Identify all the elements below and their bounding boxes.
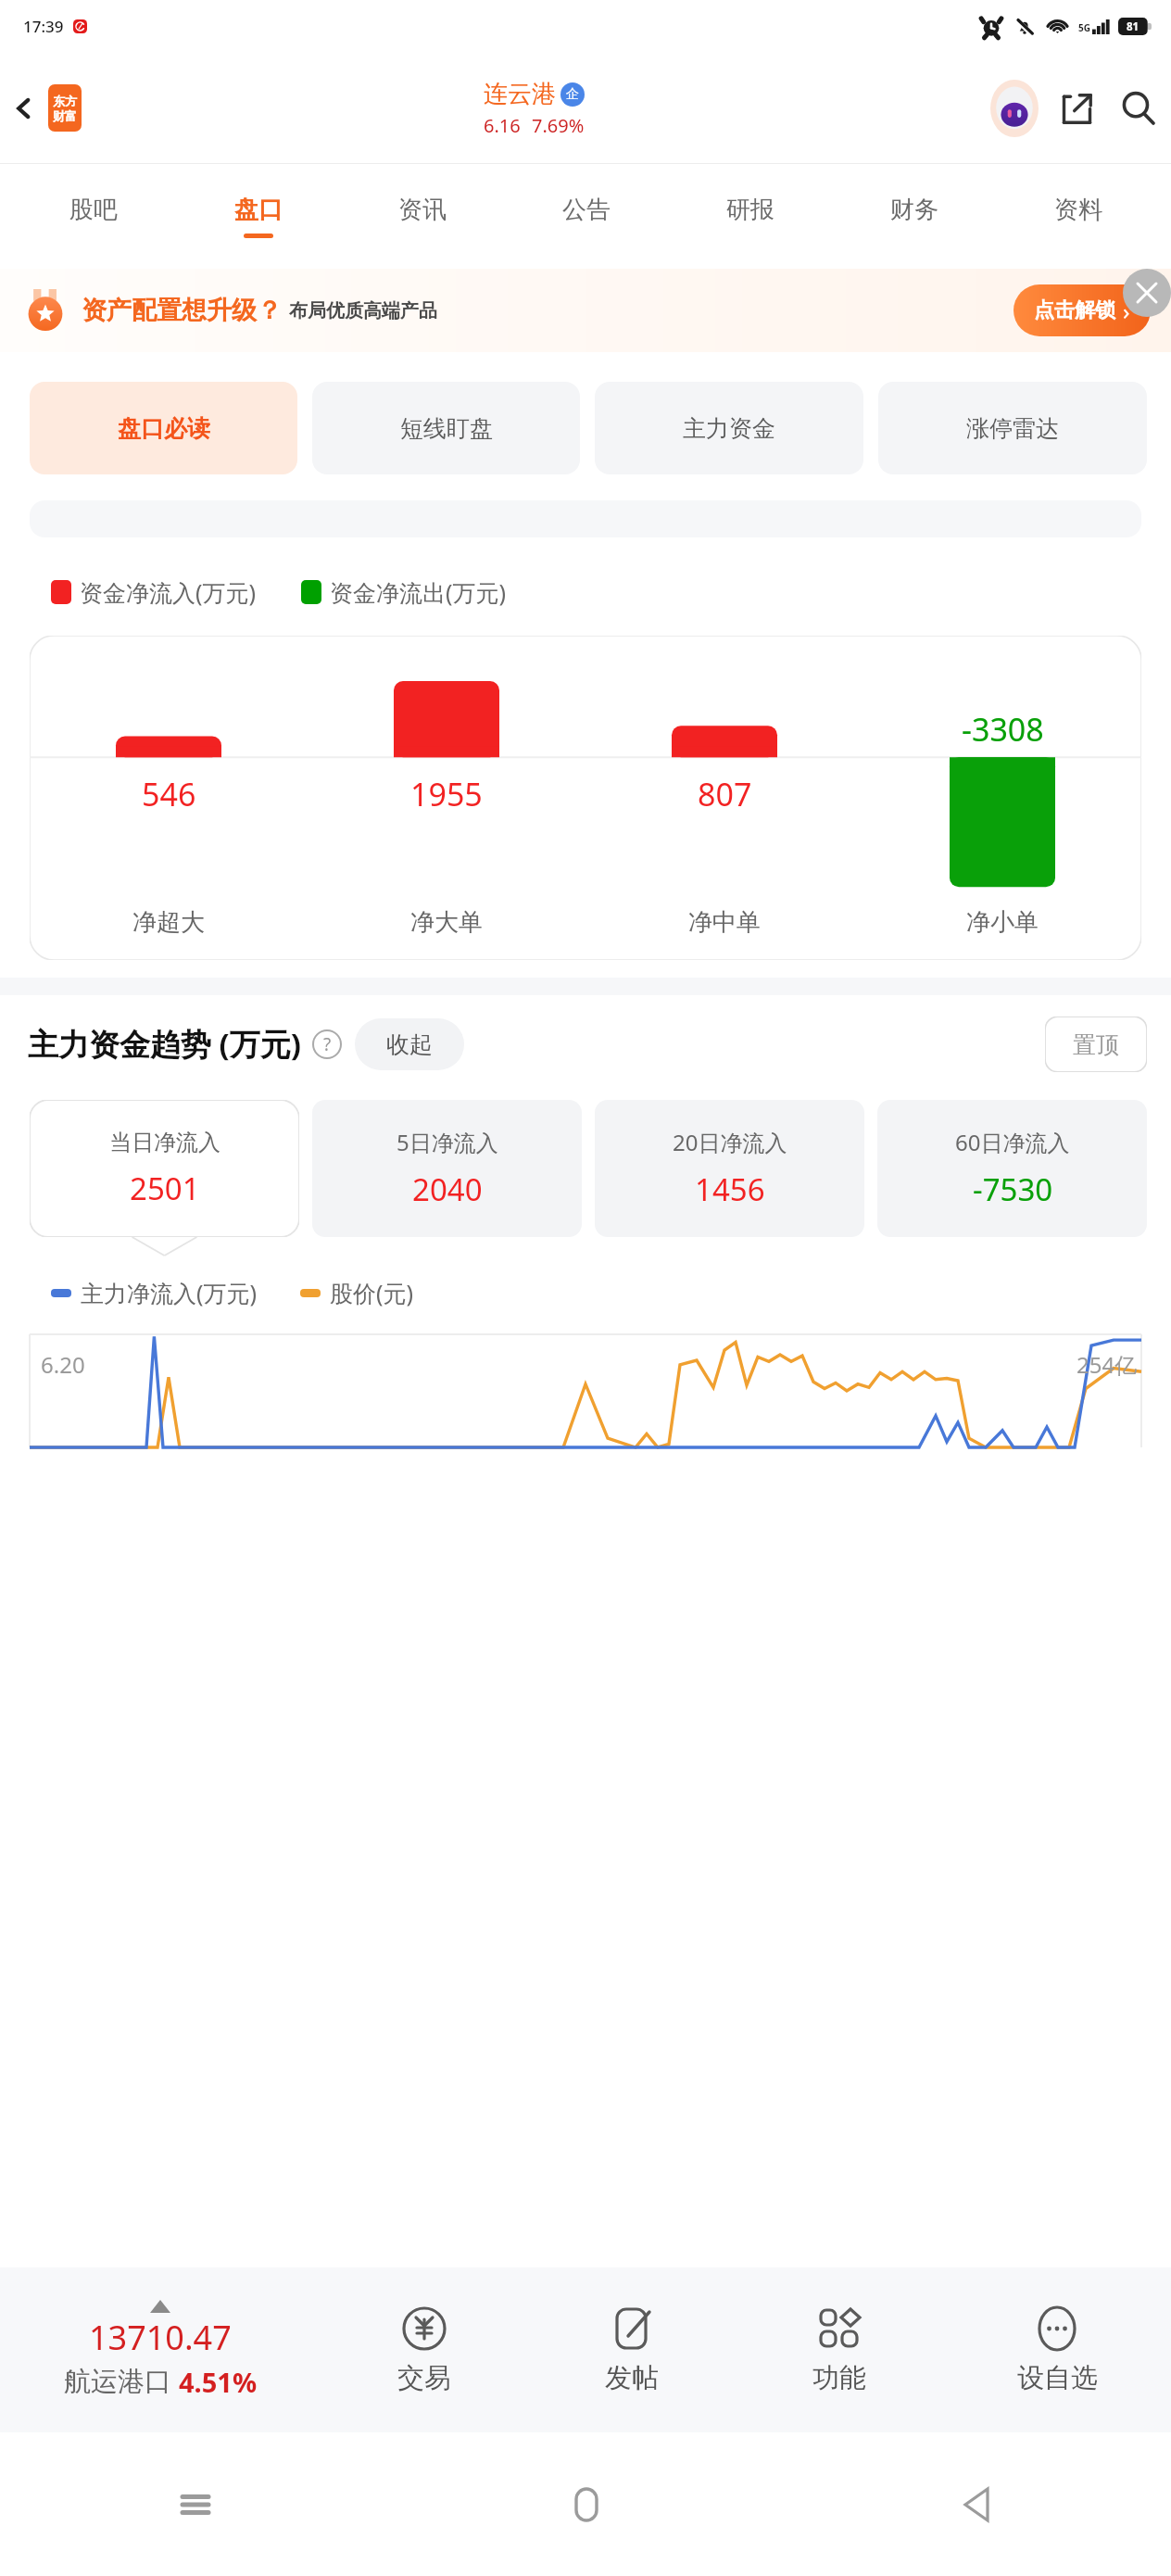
staticText: 股价(元)	[330, 1277, 414, 1308]
button[interactable]: Back	[0, 53, 48, 163]
staticText: 功能	[812, 2361, 866, 2395]
button[interactable]: 置顶	[1045, 1017, 1147, 1072]
button[interactable]: AI assistant	[988, 78, 1041, 139]
button[interactable]: 点击解锁	[1034, 284, 1130, 336]
staticText: 公告	[562, 195, 611, 225]
staticText: 546	[142, 773, 196, 815]
button[interactable]: 功能	[736, 2267, 943, 2432]
staticText: 17:39	[23, 16, 64, 37]
staticText: 东方	[53, 94, 77, 108]
staticText: 资金净流入(万元)	[80, 576, 257, 608]
button[interactable]: 5日净流入	[312, 1100, 582, 1237]
staticText: 涨停雷达	[966, 414, 1059, 443]
staticText: 净中单	[688, 907, 761, 938]
staticText: 6.20	[41, 1349, 85, 1380]
button[interactable]: 资料	[996, 164, 1160, 269]
button[interactable]: 涨停雷达	[878, 382, 1147, 474]
button[interactable]: 当日净流入	[30, 1100, 299, 1237]
staticText: 当日净流入	[109, 1129, 220, 1156]
staticText: 航运港口	[64, 2365, 171, 2399]
staticText: 60日净流入	[955, 1127, 1070, 1157]
staticText: 盘口	[234, 195, 283, 225]
staticText: 收起	[386, 1030, 433, 1059]
staticText: 7.69%	[532, 113, 585, 138]
button[interactable]: Search	[1106, 76, 1171, 141]
staticText: 5日净流入	[397, 1127, 498, 1157]
button[interactable]: 13710.47	[0, 2300, 321, 2400]
button[interactable]: 资讯	[340, 164, 504, 269]
staticText: 254亿	[1077, 1349, 1138, 1380]
button[interactable]: 东方	[48, 84, 82, 132]
staticText: 财务	[890, 195, 938, 225]
staticText: 净小单	[966, 907, 1039, 938]
button[interactable]: 设自选	[943, 2267, 1171, 2432]
staticText: 研报	[726, 195, 774, 225]
staticText: 连云港	[484, 79, 556, 109]
staticText: 设自选	[1017, 2361, 1098, 2395]
staticText: -7530	[973, 1168, 1053, 1210]
staticText: 13710.47	[89, 2315, 232, 2360]
staticText: 4.51%	[179, 2364, 258, 2400]
staticText: 点击解锁	[1034, 297, 1115, 323]
staticText: 股吧	[69, 195, 118, 225]
staticText: 主力资金趋势 (万元)	[28, 1023, 301, 1065]
button[interactable]: 盘口必读	[30, 382, 297, 474]
staticText: 1456	[695, 1168, 765, 1210]
button[interactable]: Recents	[0, 2432, 391, 2576]
staticText: 布局优质高端产品	[289, 299, 437, 322]
staticText: 盘口必读	[118, 414, 210, 443]
staticText: 交易	[397, 2361, 451, 2395]
button[interactable]: 股吧	[11, 164, 176, 269]
staticText: 发帖	[605, 2361, 659, 2395]
button[interactable]: Close	[1123, 269, 1171, 317]
staticText: 企	[566, 86, 579, 103]
button[interactable]: 发帖	[528, 2267, 736, 2432]
staticText: 81	[1127, 19, 1140, 34]
button[interactable]: 公告	[504, 164, 668, 269]
staticText: 财富	[53, 108, 77, 123]
button[interactable]: 盘口	[176, 164, 340, 269]
button[interactable]: 连云港	[484, 79, 585, 138]
staticText: 5G	[1078, 21, 1090, 34]
staticText: 6.16	[484, 113, 521, 138]
staticText: 资讯	[398, 195, 447, 225]
staticText: 资料	[1054, 195, 1102, 225]
button[interactable]: 20日净流入	[595, 1100, 864, 1237]
button[interactable]: Back	[781, 2432, 1171, 2576]
staticText: 资产配置想升级？	[82, 295, 282, 326]
staticText: ?	[323, 1032, 332, 1056]
button[interactable]: 主力资金	[595, 382, 863, 474]
button[interactable]: 短线盯盘	[312, 382, 580, 474]
staticText: 净大单	[410, 907, 483, 938]
button[interactable]: 收起	[355, 1018, 464, 1070]
staticText: 置顶	[1073, 1030, 1119, 1059]
staticText: 主力净流入(万元)	[81, 1277, 258, 1308]
button[interactable]: 财务	[832, 164, 996, 269]
staticText: 807	[698, 773, 752, 815]
button[interactable]: Help	[312, 1029, 342, 1059]
staticText: 2501	[130, 1168, 200, 1209]
button[interactable]: 资产配置想升级？	[24, 269, 1151, 352]
staticText: 2040	[412, 1168, 483, 1210]
staticText: 20日净流入	[673, 1127, 787, 1157]
button[interactable]: 交易	[321, 2267, 528, 2432]
button[interactable]: 研报	[668, 164, 832, 269]
button[interactable]: 60日净流入	[877, 1100, 1147, 1237]
staticText: 主力资金	[683, 414, 775, 443]
button[interactable]: Home	[391, 2432, 781, 2576]
staticText: -3308	[962, 708, 1044, 751]
button[interactable]: Share	[1047, 79, 1106, 138]
staticText: 资金净流出(万元)	[330, 576, 507, 608]
staticText: ›	[1123, 296, 1130, 326]
staticText: 1955	[410, 773, 483, 815]
staticText: 短线盯盘	[400, 414, 493, 443]
staticText: 净超大	[132, 907, 205, 938]
